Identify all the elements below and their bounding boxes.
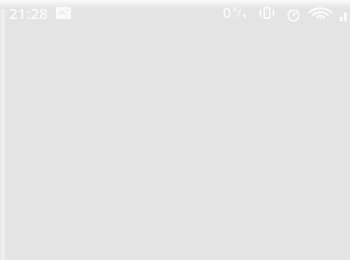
other: Alarm set [287,8,300,21]
staticText: s [243,11,247,21]
staticText: / [237,5,242,20]
staticText: 0 [223,3,232,22]
staticText: 21:28 [9,3,49,23]
other: Mobile signal strength [338,12,348,22]
other: Screenshot saved [56,7,71,19]
other: Wi-Fi connected [311,7,330,20]
staticText: K [233,5,238,15]
other: Ringer set to vibrate [259,7,275,19]
